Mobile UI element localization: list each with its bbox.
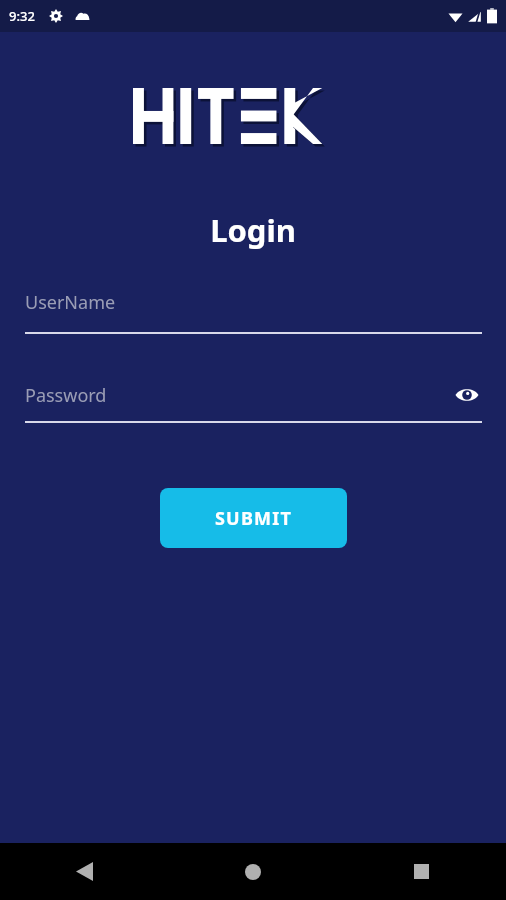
button[interactable]: Show password: [452, 380, 482, 410]
button[interactable]: SUBMIT: [160, 488, 347, 548]
button[interactable]: Back: [0, 843, 168, 900]
staticText: SUBMIT: [215, 506, 293, 531]
button[interactable]: Recent apps: [337, 843, 506, 900]
staticText: 9:32: [9, 7, 35, 25]
staticText: Password: [25, 383, 452, 408]
button[interactable]: Password: [25, 380, 482, 423]
button[interactable]: Home: [168, 843, 337, 900]
staticText: Login: [0, 209, 506, 251]
staticText: UserName: [25, 290, 116, 315]
button[interactable]: UserName: [25, 290, 482, 334]
